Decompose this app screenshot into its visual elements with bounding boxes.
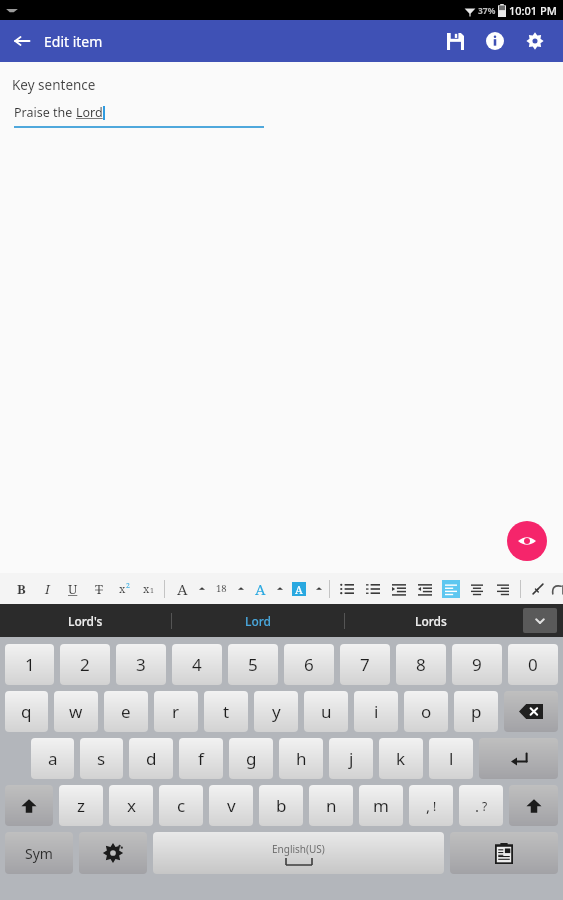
button[interactable] — [551, 573, 563, 604]
button[interactable] — [312, 573, 325, 604]
button[interactable]: Lord — [172, 604, 344, 637]
button[interactable]: q — [5, 691, 48, 732]
button[interactable]: w — [54, 691, 98, 732]
button[interactable]: a — [31, 738, 74, 779]
button[interactable]: j — [329, 738, 373, 779]
button[interactable] — [273, 573, 286, 604]
button[interactable]: 4 — [172, 644, 222, 685]
button[interactable]: g — [229, 738, 273, 779]
staticText: 9 — [472, 653, 482, 676]
staticText: v — [227, 794, 236, 817]
button[interactable]: y — [254, 691, 298, 732]
button[interactable]: x — [109, 785, 153, 826]
staticText: z — [77, 794, 85, 817]
button[interactable]: Keyboard settings — [79, 832, 147, 874]
button[interactable] — [234, 573, 247, 604]
staticText: x — [119, 581, 126, 596]
button[interactable]: Back — [0, 20, 44, 62]
staticText: 2 — [126, 581, 130, 591]
button[interactable] — [490, 573, 516, 604]
staticText: I — [45, 580, 50, 598]
button[interactable]: p — [454, 691, 498, 732]
button[interactable]: k — [379, 738, 423, 779]
button[interactable]: 18 — [208, 573, 234, 604]
button[interactable]: Shift — [5, 785, 53, 826]
button[interactable]: 0 — [508, 644, 558, 685]
button[interactable]: 5 — [228, 644, 278, 685]
button[interactable]: 8 — [396, 644, 446, 685]
button[interactable]: d — [129, 738, 173, 779]
button[interactable] — [438, 573, 464, 604]
staticText: Key sentence — [12, 76, 96, 94]
button[interactable]: Settings — [515, 21, 555, 61]
staticText: f — [198, 747, 204, 770]
staticText: g — [246, 747, 257, 770]
staticText: x — [127, 794, 136, 817]
button[interactable]: Info — [475, 21, 515, 61]
button[interactable]: i — [354, 691, 398, 732]
button[interactable]: Preview — [507, 521, 547, 561]
button[interactable]: 6 — [284, 644, 334, 685]
button[interactable] — [412, 573, 438, 604]
button[interactable]: f — [179, 738, 223, 779]
button[interactable]: T — [86, 573, 112, 604]
button[interactable]: Clipboard — [450, 832, 558, 874]
button[interactable]: x — [136, 573, 160, 604]
button[interactable]: A — [286, 573, 312, 604]
button[interactable]: c — [159, 785, 203, 826]
button[interactable] — [334, 573, 360, 604]
button[interactable]: Symbols — [5, 832, 73, 874]
button[interactable]: Backspace — [504, 691, 558, 732]
button[interactable]: z — [59, 785, 103, 826]
button[interactable] — [360, 573, 386, 604]
button[interactable]: A — [247, 573, 273, 604]
button[interactable]: 7 — [340, 644, 390, 685]
staticText: h — [296, 747, 307, 770]
button[interactable] — [386, 573, 412, 604]
button[interactable]: h — [279, 738, 323, 779]
button[interactable]: . — [459, 785, 503, 826]
button[interactable]: s — [80, 738, 123, 779]
button[interactable]: Lord's — [0, 604, 171, 637]
button[interactable]: 9 — [452, 644, 502, 685]
staticText: 8 — [416, 653, 426, 676]
button[interactable]: 3 — [116, 644, 166, 685]
button[interactable]: n — [309, 785, 353, 826]
staticText: 10:01 PM — [509, 3, 557, 18]
button[interactable]: m — [359, 785, 403, 826]
button[interactable]: Enter — [479, 738, 558, 779]
button[interactable]: Save — [435, 21, 475, 61]
button[interactable]: A — [169, 573, 195, 604]
staticText: B — [17, 580, 26, 598]
button[interactable]: e — [104, 691, 148, 732]
button[interactable] — [525, 573, 551, 604]
button[interactable] — [195, 573, 208, 604]
staticText: English(US) — [272, 842, 325, 856]
button[interactable]: o — [404, 691, 448, 732]
button[interactable] — [464, 573, 490, 604]
button[interactable]: B — [8, 573, 34, 604]
button[interactable]: x — [112, 573, 136, 604]
button[interactable]: l — [429, 738, 473, 779]
staticText: r — [172, 700, 180, 723]
button[interactable]: I — [34, 573, 60, 604]
button[interactable]: t — [204, 691, 248, 732]
staticText: j — [349, 747, 354, 770]
staticText: Lord — [76, 104, 103, 121]
button[interactable]: 1 — [5, 644, 54, 685]
staticText: U — [68, 580, 78, 598]
staticText: , — [426, 796, 431, 816]
button[interactable]: Lords — [345, 604, 517, 637]
staticText: Praise the — [14, 104, 76, 121]
button[interactable]: v — [209, 785, 253, 826]
button[interactable]: Expand suggestions — [523, 608, 557, 633]
button[interactable]: r — [154, 691, 198, 732]
button[interactable]: b — [259, 785, 303, 826]
button[interactable]: 2 — [60, 644, 110, 685]
button[interactable]: u — [304, 691, 348, 732]
button[interactable]: U — [60, 573, 86, 604]
button[interactable]: , — [409, 785, 453, 826]
button[interactable]: Shift — [509, 785, 558, 826]
button[interactable]: Space — [153, 832, 444, 874]
staticText: a — [48, 747, 58, 770]
